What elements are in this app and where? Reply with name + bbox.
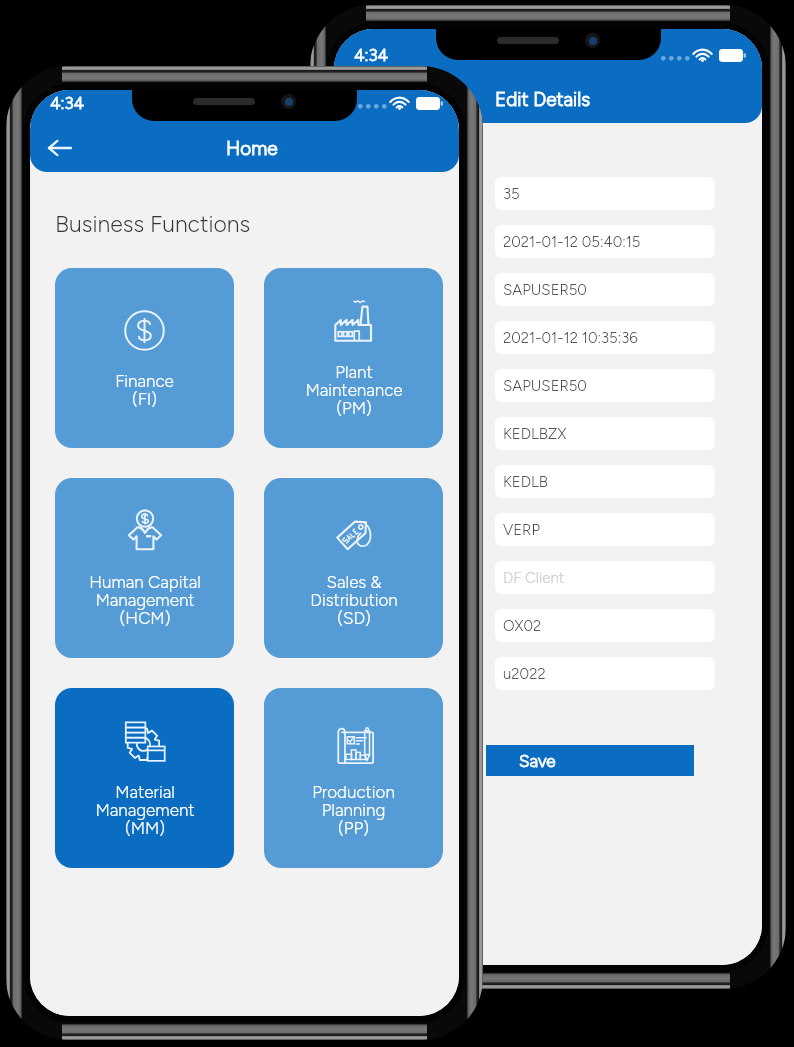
staticText: Material Management (MM) [95, 782, 195, 839]
button[interactable]: 2021-01-12 05:40:15 [495, 225, 715, 258]
staticText: DF Client [503, 569, 565, 587]
staticText: Sales & Distribution (SD) [310, 572, 398, 629]
staticText: 2021-01-12 10:35:36 [503, 329, 638, 347]
staticText: 4:34 [354, 45, 389, 65]
button[interactable]: KEDLB [495, 465, 715, 498]
button[interactable]: Material Management (MM) [55, 688, 234, 868]
button[interactable]: Back [38, 126, 82, 170]
staticText: VERP [503, 521, 540, 539]
staticText: 2021-01-12 05:40:15 [503, 233, 641, 251]
button[interactable]: Plant Maintenance (PM) [264, 268, 443, 448]
button[interactable]: 2021-01-12 10:35:36 [495, 321, 715, 354]
staticText: Edit Details [495, 88, 591, 111]
button[interactable]: Human Capital Management (HCM) [55, 478, 234, 658]
staticText: Finance (FI) [115, 371, 174, 410]
staticText: SAPUSER50 [503, 281, 587, 299]
staticText: 35 [503, 185, 520, 203]
staticText: OX02 [503, 617, 542, 635]
staticText: 4:34 [50, 93, 85, 113]
staticText: Human Capital Management (HCM) [89, 572, 201, 629]
staticText: KEDLBZX [503, 425, 567, 443]
staticText: Save [519, 751, 556, 771]
button[interactable]: OX02 [495, 609, 715, 642]
button[interactable]: Production Planning (PP) [264, 688, 443, 868]
button[interactable]: u2022 [495, 657, 715, 690]
button[interactable]: DF Client [495, 561, 715, 594]
button[interactable]: SAPUSER50 [495, 273, 715, 306]
button[interactable]: Finance (FI) [55, 268, 234, 448]
button[interactable]: VERP [495, 513, 715, 546]
staticText: Plant Maintenance (PM) [305, 362, 403, 419]
staticText: SAPUSER50 [503, 377, 587, 395]
staticText: u2022 [503, 665, 546, 683]
staticText: Business Functions [55, 210, 251, 238]
button[interactable]: Sales & Distribution (SD) [264, 478, 443, 658]
button[interactable]: SAPUSER50 [495, 369, 715, 402]
staticText: KEDLB [503, 473, 548, 491]
button[interactable]: Save [486, 745, 694, 776]
button[interactable]: KEDLBZX [495, 417, 715, 450]
staticText: Production Planning (PP) [312, 782, 395, 839]
staticText: Home [226, 137, 278, 160]
button[interactable]: 35 [495, 177, 715, 210]
